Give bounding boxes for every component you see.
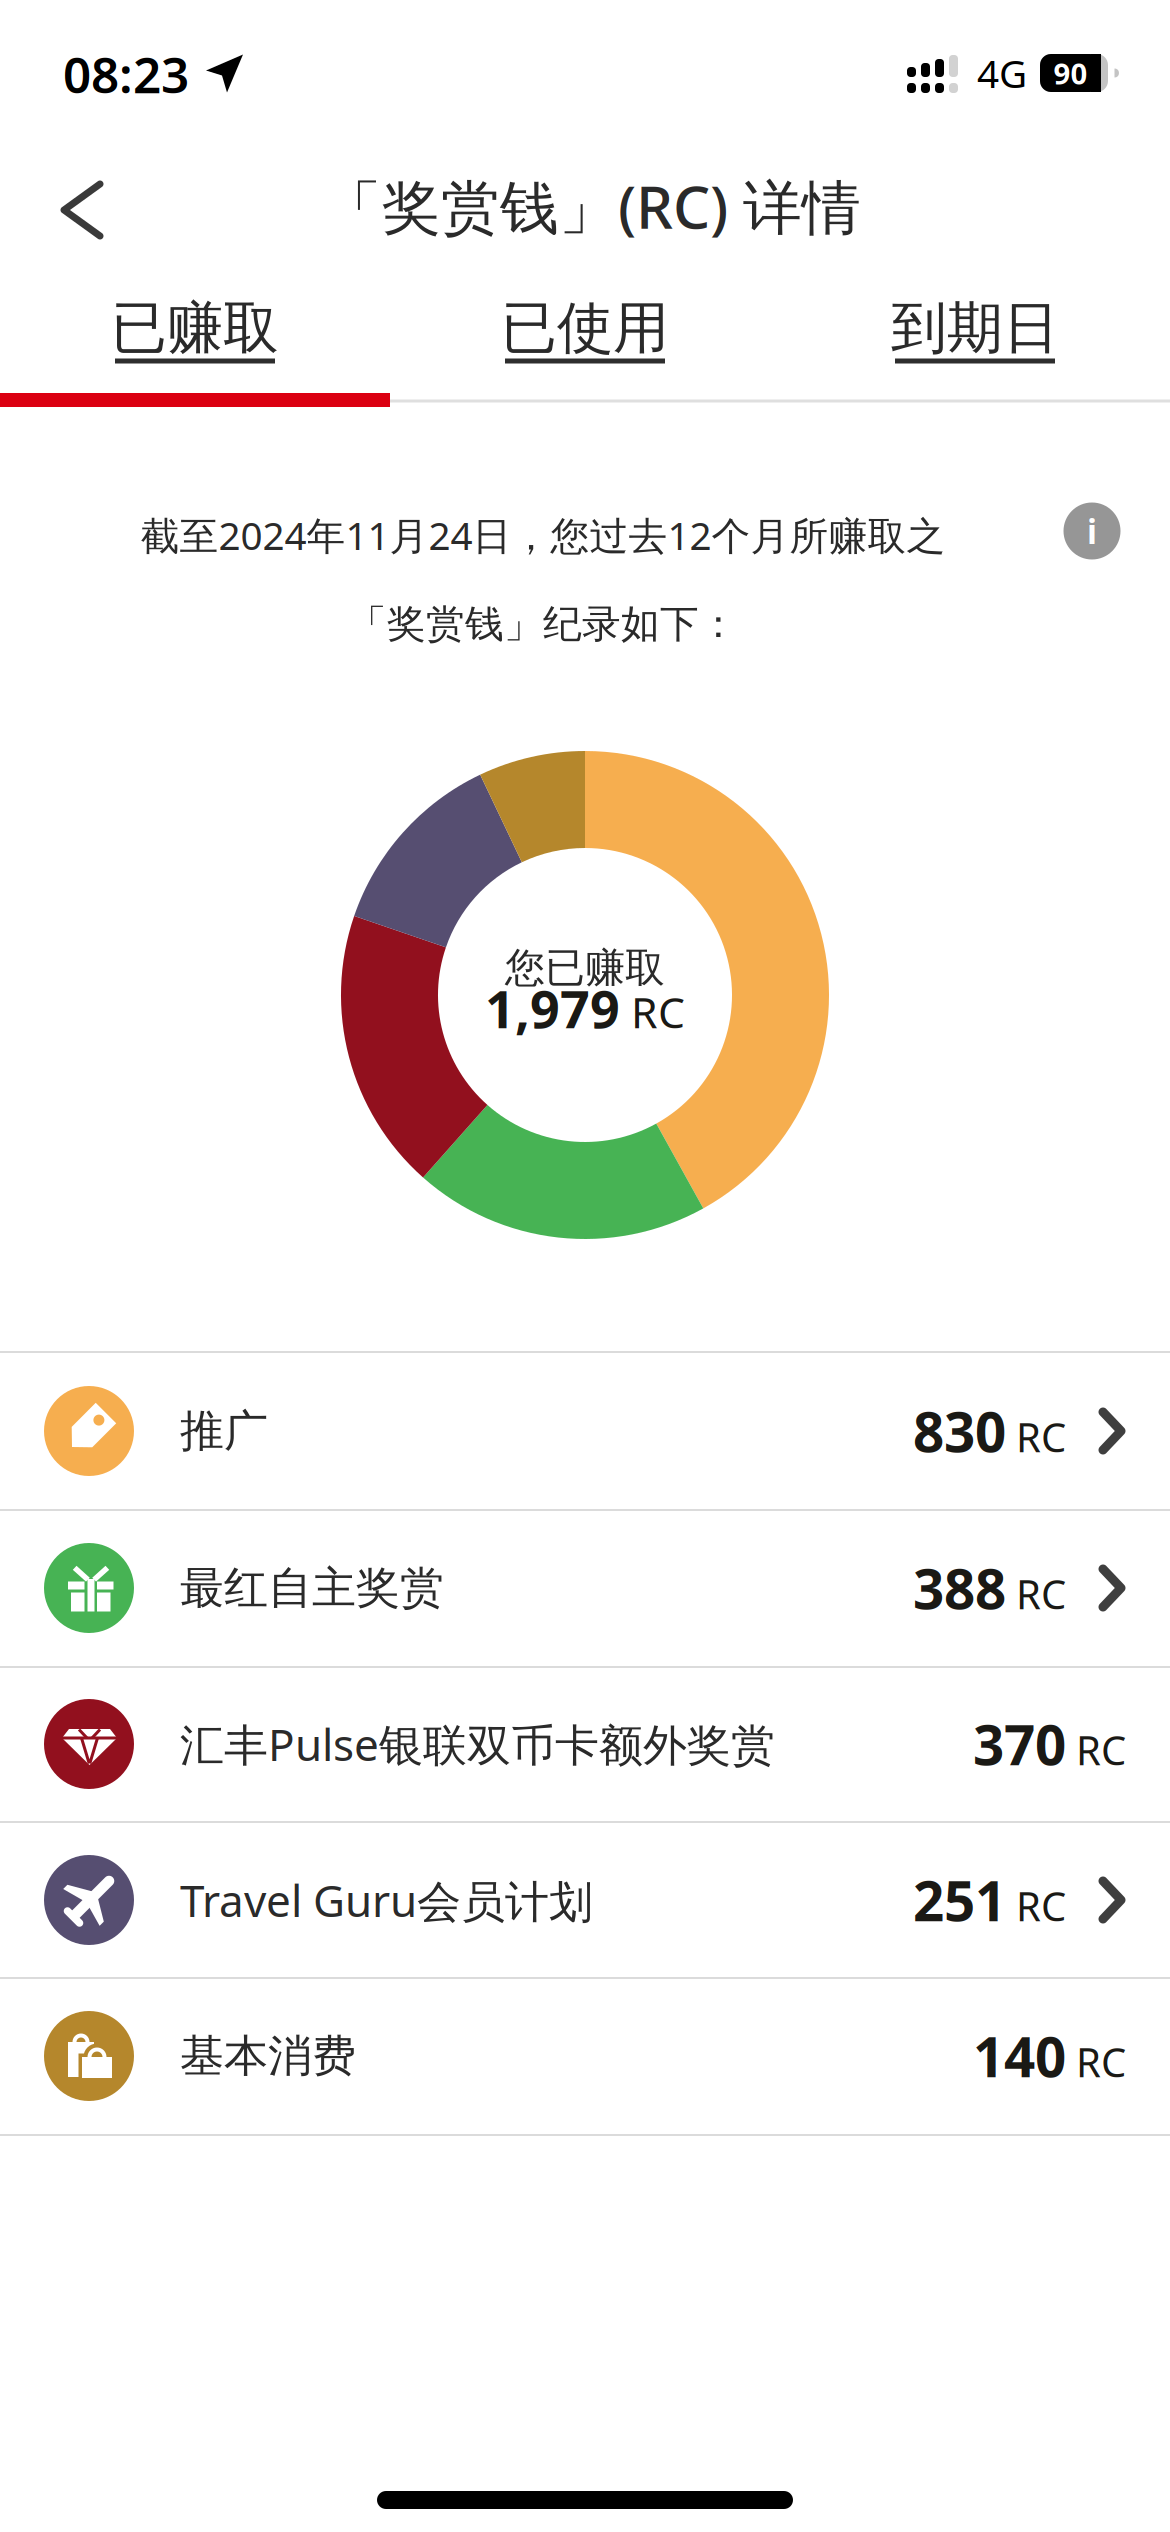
staticText: 388 RC: [913, 1552, 1066, 1624]
staticText: 您已赚取: [505, 943, 665, 992]
staticText: 1,979 RC: [485, 973, 685, 1043]
staticText: i: [1087, 509, 1097, 553]
staticText: 140 RC: [973, 2020, 1126, 2092]
staticText: 最红自主奖赏: [180, 1561, 444, 1615]
staticText: Travel Guru会员计划: [180, 1871, 593, 1929]
staticText: 830 RC: [913, 1395, 1066, 1467]
staticText: 08:23: [63, 41, 189, 107]
staticText: 到期日: [891, 294, 1059, 362]
staticText: 「奖赏钱」(RC) 详情: [323, 167, 861, 245]
staticText: 汇丰Pulse银联双币卡额外奖赏: [180, 1715, 775, 1773]
staticText: 基本消费: [180, 2029, 356, 2083]
staticText: 「奖赏钱」纪录如下：: [348, 600, 738, 648]
staticText: 推广: [180, 1404, 268, 1458]
staticText: 90: [1053, 53, 1087, 92]
staticText: 已赚取: [111, 294, 279, 362]
staticText: 截至2024年11月24日，您过去12个月所赚取之: [140, 509, 945, 561]
staticText: 已使用: [501, 294, 669, 362]
staticText: 370 RC: [973, 1708, 1126, 1780]
staticText: 251 RC: [913, 1864, 1066, 1936]
staticText: 4G: [977, 47, 1027, 99]
